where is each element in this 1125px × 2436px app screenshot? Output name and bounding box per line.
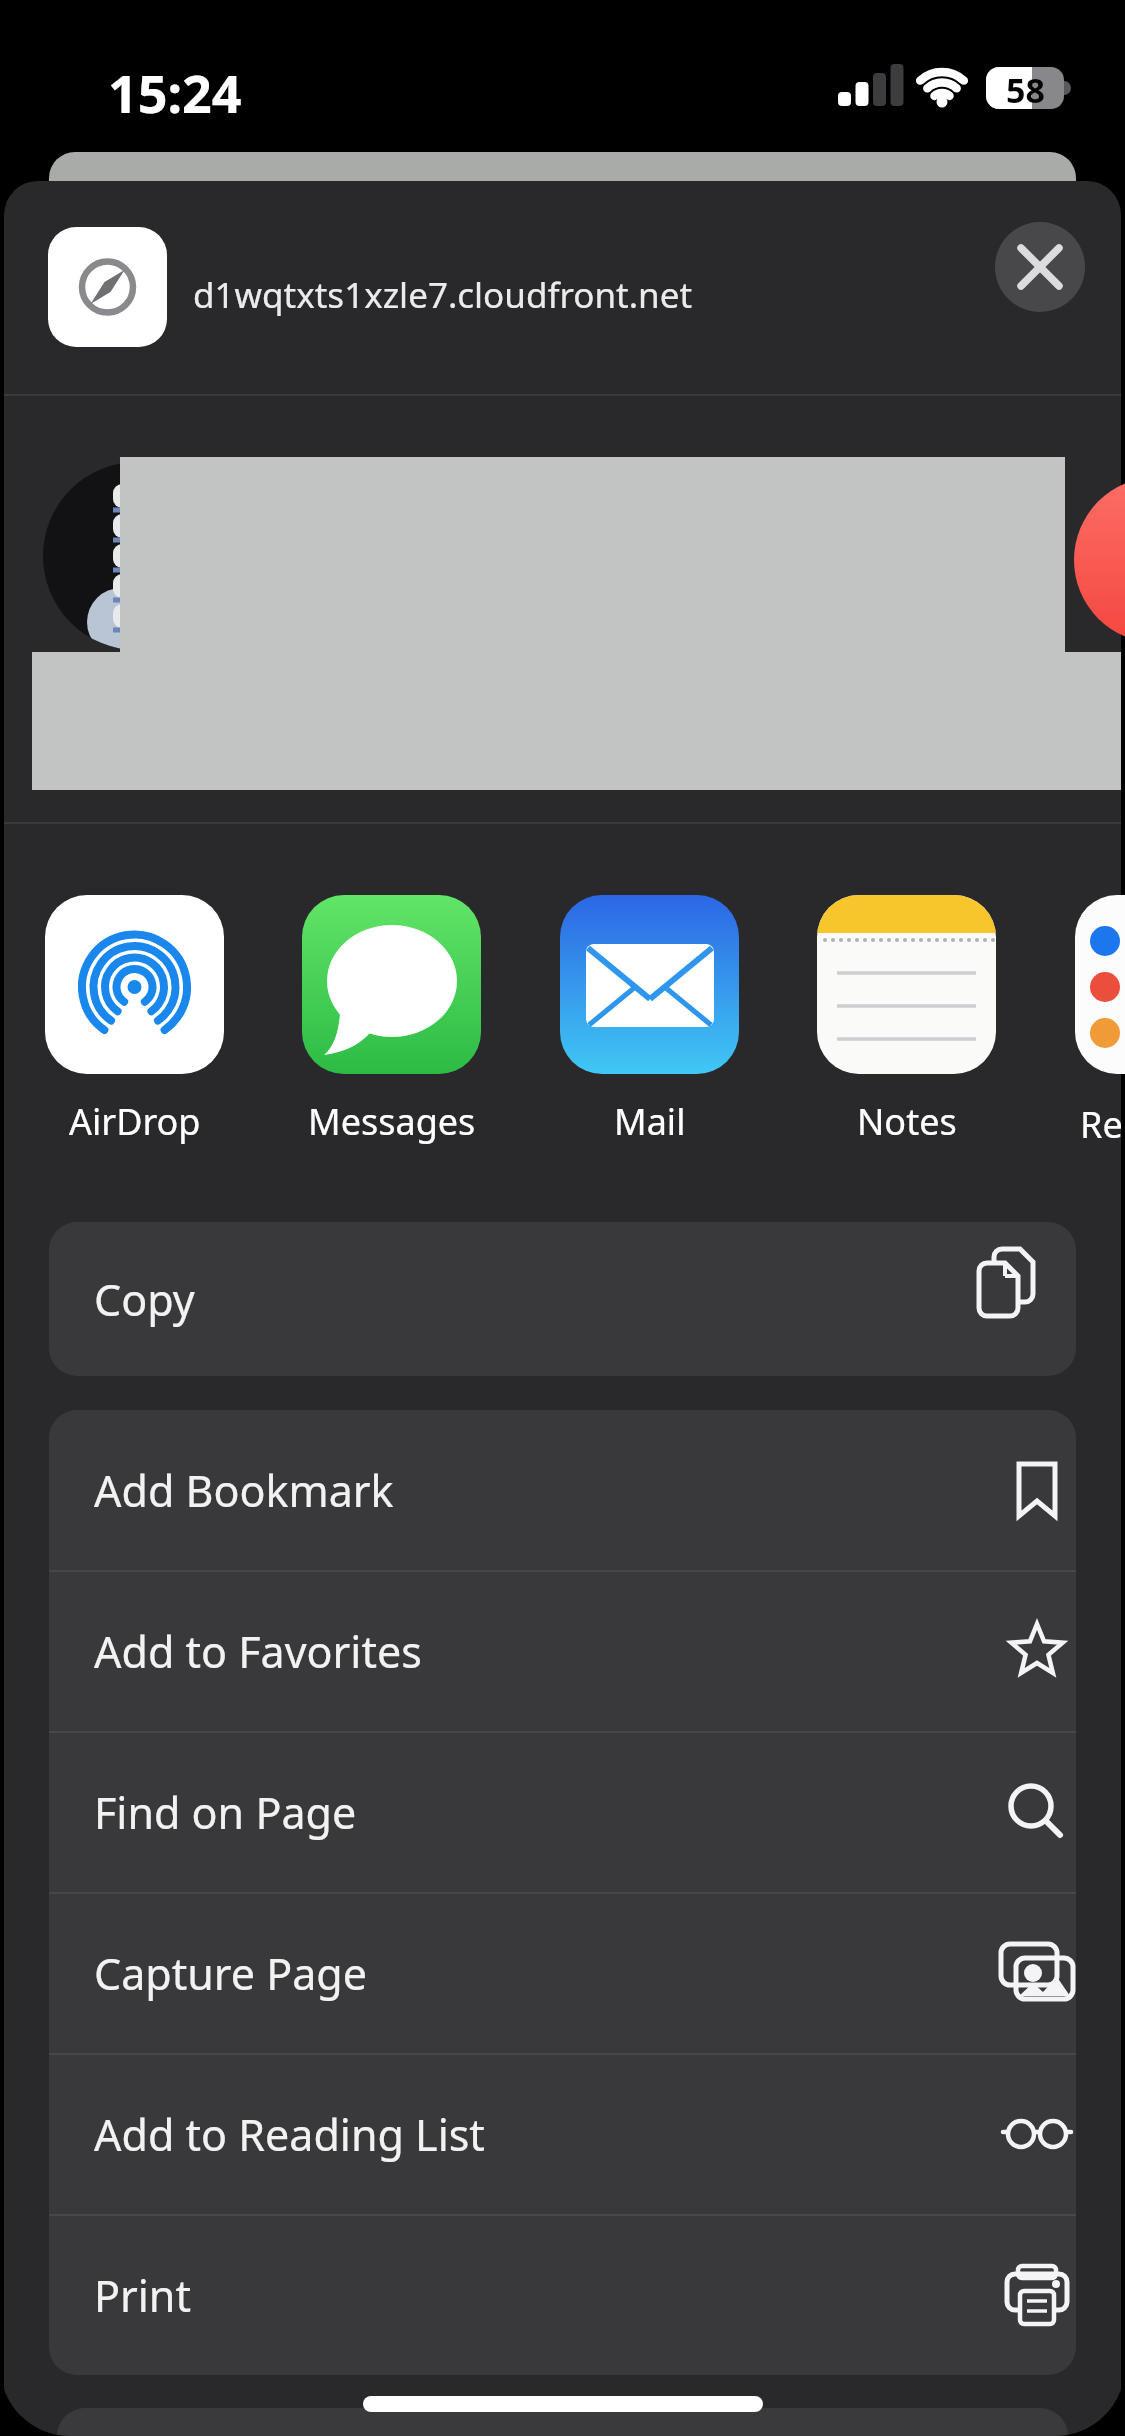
staticText: d1wqtxts1xzle7.cloudfront.net xyxy=(193,271,693,319)
button[interactable] xyxy=(302,895,481,1074)
staticText: Add Bookmark xyxy=(94,1461,394,1520)
button[interactable]: Find on Page xyxy=(49,1732,1076,1892)
button[interactable] xyxy=(1075,895,1125,1074)
staticText: Capture Page xyxy=(94,1944,368,2003)
staticText: Add to Favorites xyxy=(94,1622,422,1681)
staticText: Messages xyxy=(308,1097,476,1146)
staticText: Rem xyxy=(1080,1100,1125,1149)
button[interactable] xyxy=(560,895,739,1074)
button[interactable] xyxy=(817,895,996,1074)
staticText: Copy xyxy=(94,1270,195,1329)
staticText: Mail xyxy=(614,1097,686,1146)
staticText: AirDrop xyxy=(69,1097,201,1146)
staticText: 58 xyxy=(1006,67,1045,109)
button[interactable]: Capture Page xyxy=(49,1893,1076,2053)
staticText: Add to Reading List xyxy=(94,2105,485,2164)
staticText: Notes xyxy=(857,1097,957,1146)
button[interactable]: Copy xyxy=(49,1222,1076,1376)
staticText: Find on Page xyxy=(94,1783,357,1842)
button[interactable] xyxy=(45,895,224,1074)
staticText: 15:24 xyxy=(108,57,242,128)
button[interactable] xyxy=(995,222,1085,312)
staticText: Print xyxy=(94,2266,191,2325)
button[interactable]: Print xyxy=(49,2215,1076,2375)
button[interactable]: Add to Favorites xyxy=(49,1571,1076,1731)
button[interactable]: Add to Reading List xyxy=(49,2054,1076,2214)
button[interactable]: Add Bookmark xyxy=(49,1410,1076,1570)
